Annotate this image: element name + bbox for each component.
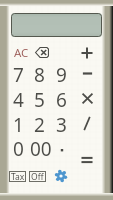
button[interactable]: Double zero — [28, 136, 54, 158]
button[interactable]: 2 — [28, 112, 50, 134]
staticText: 4 — [13, 87, 24, 109]
staticText: 00 — [30, 136, 52, 158]
button[interactable]: Multiply — [76, 87, 98, 109]
staticText: 7 — [13, 62, 24, 84]
button[interactable]: 7 — [7, 62, 29, 84]
button[interactable]: Off — [29, 171, 46, 182]
staticText: 1 — [13, 112, 24, 134]
button[interactable]: Backspace — [31, 42, 53, 62]
button[interactable]: Decimal point — [51, 136, 73, 158]
button[interactable]: Minus — [76, 62, 98, 84]
button[interactable]: 0 — [7, 136, 29, 158]
staticText: 2 — [34, 112, 45, 134]
button[interactable]: 4 — [7, 87, 29, 109]
button[interactable]: 9 — [50, 62, 72, 84]
button[interactable]: 3 — [50, 112, 72, 134]
button[interactable]: 8 — [28, 62, 50, 84]
staticText: Tax — [11, 171, 25, 182]
button[interactable]: All clear — [10, 43, 32, 63]
staticText: 3 — [56, 112, 67, 134]
staticText: 8 — [34, 62, 45, 84]
button[interactable]: 1 — [7, 112, 29, 134]
button[interactable]: Divide — [76, 112, 98, 134]
staticText: 5 — [34, 87, 45, 109]
staticText: 6 — [56, 87, 67, 109]
button[interactable]: 5 — [28, 87, 50, 109]
button[interactable]: Equals — [76, 149, 98, 171]
button[interactable]: Tax — [9, 171, 26, 182]
button[interactable]: 6 — [50, 87, 72, 109]
button[interactable]: Settings — [54, 169, 68, 183]
button[interactable]: Plus — [76, 43, 98, 63]
staticText: Off — [31, 171, 44, 182]
staticText: 0 — [13, 136, 24, 158]
staticText: 9 — [56, 62, 67, 84]
staticText: AC — [14, 45, 29, 61]
